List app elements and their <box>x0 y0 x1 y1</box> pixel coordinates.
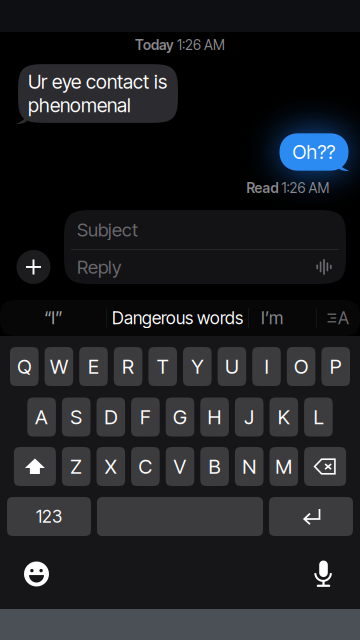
button[interactable]: O <box>287 347 315 386</box>
button[interactable]: Dangerous words <box>107 300 248 336</box>
button[interactable]: Z <box>62 447 90 486</box>
staticText: Y <box>191 354 203 379</box>
button[interactable]: Shift <box>14 447 56 486</box>
staticText: J <box>244 405 254 429</box>
button[interactable]: V <box>166 447 194 486</box>
button[interactable]: P <box>321 347 350 386</box>
button[interactable]: Return <box>269 497 353 536</box>
staticText: 1:26 AM <box>281 179 329 196</box>
staticText: Today <box>135 36 177 53</box>
button[interactable]: Y <box>183 347 212 386</box>
staticText: Dangerous words <box>112 307 243 328</box>
staticText: R <box>122 354 134 379</box>
staticText: B <box>209 454 221 479</box>
button[interactable]: Dictation <box>301 559 345 589</box>
staticText: V <box>173 454 186 479</box>
staticText: S <box>70 405 82 429</box>
button[interactable]: T <box>148 347 177 386</box>
button[interactable]: E <box>79 347 108 386</box>
button[interactable]: L <box>304 397 333 436</box>
button[interactable]: K <box>269 397 298 436</box>
button[interactable]: H <box>200 397 229 436</box>
button[interactable]: B <box>200 447 229 486</box>
button[interactable]: 123 <box>7 497 91 536</box>
staticText: M <box>275 454 292 479</box>
staticText: 123 <box>36 506 62 527</box>
staticText: Ur eye contact is phenomenal <box>28 70 167 117</box>
button[interactable]: Q <box>10 347 39 386</box>
button[interactable]: “I” <box>0 300 106 336</box>
staticText: L <box>313 405 323 429</box>
button[interactable]: C <box>131 447 160 486</box>
button[interactable]: S <box>62 397 90 436</box>
staticText: Q <box>17 354 31 379</box>
button[interactable]: Delete <box>304 447 346 486</box>
staticText: Read <box>246 179 281 196</box>
staticText: D <box>104 405 117 429</box>
staticText: E <box>88 354 99 379</box>
staticText: Z <box>70 454 82 479</box>
staticText: F <box>140 405 151 429</box>
staticText: G <box>173 405 187 429</box>
button[interactable]: J <box>235 397 263 436</box>
staticText: K <box>278 405 290 429</box>
staticText: Reply <box>77 256 122 278</box>
staticText: O <box>294 354 308 379</box>
button[interactable]: U <box>218 347 246 386</box>
button[interactable]: N <box>235 447 263 486</box>
staticText: H <box>208 405 222 429</box>
button[interactable]: Add attachment <box>13 246 53 288</box>
staticText: A <box>338 307 349 328</box>
staticText: A <box>35 405 48 429</box>
staticText: T <box>157 354 169 379</box>
staticText: U <box>225 354 239 379</box>
button[interactable]: Text formatting <box>317 300 360 336</box>
staticText: 1:26 AM <box>177 36 225 53</box>
button[interactable]: F <box>131 397 160 436</box>
button[interactable]: M <box>269 447 298 486</box>
button[interactable]: Emoji <box>14 559 58 589</box>
button[interactable]: D <box>96 397 125 436</box>
staticText: X <box>105 454 117 479</box>
button[interactable]: I’m <box>249 300 316 336</box>
staticText: W <box>50 354 68 379</box>
staticText: I’m <box>261 307 283 328</box>
staticText: I <box>264 354 268 379</box>
staticText: “I” <box>44 307 62 328</box>
button[interactable]: G <box>166 397 194 436</box>
staticText: P <box>330 354 342 379</box>
staticText: Subject <box>77 218 138 241</box>
button[interactable]: I <box>252 347 281 386</box>
button[interactable]: R <box>114 347 142 386</box>
staticText: C <box>138 454 152 479</box>
staticText: N <box>242 454 256 479</box>
staticText: Oh?? <box>292 140 335 164</box>
button[interactable]: A <box>27 397 56 436</box>
button[interactable]: W <box>45 347 73 386</box>
button[interactable]: X <box>96 447 125 486</box>
